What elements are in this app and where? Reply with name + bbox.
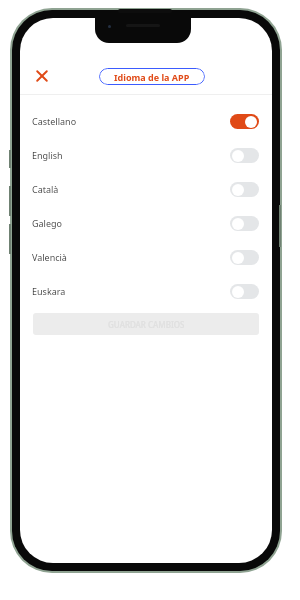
staticText: Galego	[32, 217, 230, 229]
button[interactable]: On	[230, 114, 259, 129]
staticText: GUARDAR CAMBIOS	[108, 319, 185, 330]
button[interactable]: Euskara	[20, 274, 272, 308]
button[interactable]: Close	[27, 61, 57, 91]
button[interactable]: Off	[230, 148, 259, 163]
button[interactable]: Idioma de la APP	[99, 68, 205, 85]
button[interactable]: Off	[230, 216, 259, 231]
staticText: Idioma de la APP	[114, 71, 190, 83]
button[interactable]: Off	[230, 250, 259, 265]
button[interactable]: Off	[230, 284, 259, 299]
staticText: Català	[32, 183, 230, 195]
button[interactable]: Valencià	[20, 240, 272, 274]
staticText: Valencià	[32, 251, 230, 263]
staticText: Castellano	[32, 115, 230, 127]
staticText: English	[32, 149, 230, 161]
button[interactable]: Castellano	[20, 104, 272, 138]
button[interactable]: Galego	[20, 206, 272, 240]
staticText: Euskara	[32, 285, 230, 297]
button[interactable]: Off	[230, 182, 259, 197]
button[interactable]: English	[20, 138, 272, 172]
button[interactable]: Català	[20, 172, 272, 206]
